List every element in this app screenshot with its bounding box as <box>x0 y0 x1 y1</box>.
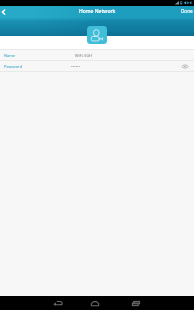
button[interactable]: Done <box>176 6 194 18</box>
button[interactable]: Show password <box>181 62 189 70</box>
button[interactable]: Name <box>0 50 194 60</box>
staticText: Done <box>181 8 193 14</box>
button[interactable]: Home <box>85 296 105 310</box>
button[interactable]: Recents <box>126 296 146 310</box>
staticText: Password <box>4 64 23 69</box>
button[interactable]: Network avatar <box>87 26 107 44</box>
staticText: WiFi-5GH <box>75 53 93 58</box>
button[interactable]: Password <box>0 61 194 71</box>
staticText: •••••• <box>71 64 81 69</box>
staticText: Home Network <box>79 8 116 15</box>
button[interactable]: Back <box>48 296 68 310</box>
button[interactable]: Back <box>0 7 9 16</box>
staticText: Name <box>4 53 16 58</box>
